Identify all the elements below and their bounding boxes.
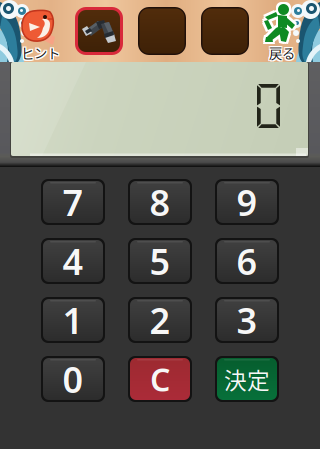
button[interactable]: 2 (128, 297, 192, 343)
button[interactable]: Empty tool slot (138, 7, 186, 55)
staticText: 戻る (268, 42, 294, 61)
staticText: 3 (236, 296, 257, 344)
staticText: ヒント (21, 44, 60, 63)
staticText: 戻る (270, 42, 296, 61)
staticText: 6 (236, 237, 257, 285)
button[interactable]: 3 (215, 297, 279, 343)
button[interactable]: 0 (41, 356, 105, 402)
staticText: 戻る (269, 42, 295, 61)
staticText: 戻る (269, 44, 295, 63)
button[interactable]: Empty tool slot (201, 7, 249, 55)
staticText: 9 (236, 178, 257, 226)
staticText: 戻る (270, 43, 296, 62)
staticText: ヒント (22, 43, 61, 62)
staticText: 4 (62, 237, 83, 285)
button[interactable]: Binoculars tool, selected (75, 7, 123, 55)
staticText: 0 (62, 355, 83, 403)
button[interactable]: C (128, 356, 192, 402)
staticText: ヒント (20, 44, 59, 63)
staticText: C (150, 358, 170, 400)
staticText: 8 (149, 178, 170, 226)
button[interactable]: 4 (41, 238, 105, 284)
staticText: 戻る (269, 43, 295, 62)
button[interactable]: 決定 (215, 356, 279, 402)
button[interactable]: 1 (41, 297, 105, 343)
staticText: ヒント (20, 42, 59, 61)
staticText: 2 (149, 296, 170, 344)
staticText: ヒント (22, 42, 61, 61)
button[interactable]: Back (256, 0, 320, 62)
staticText: 決定 (224, 363, 270, 395)
button[interactable]: 8 (128, 179, 192, 225)
staticText: 戻る (270, 44, 296, 63)
staticText: ヒント (21, 43, 60, 62)
staticText: ヒント (21, 42, 60, 61)
staticText: 戻る (268, 44, 294, 63)
button[interactable]: 9 (215, 179, 279, 225)
staticText: 5 (149, 237, 170, 285)
button[interactable]: 6 (215, 238, 279, 284)
button[interactable]: 5 (128, 238, 192, 284)
staticText: ヒント (20, 43, 59, 62)
staticText: 7 (62, 178, 83, 226)
staticText: 1 (62, 296, 83, 344)
button[interactable]: Hint (0, 0, 70, 62)
button[interactable]: 7 (41, 179, 105, 225)
staticText: ヒント (22, 44, 61, 63)
staticText: 戻る (268, 43, 294, 62)
